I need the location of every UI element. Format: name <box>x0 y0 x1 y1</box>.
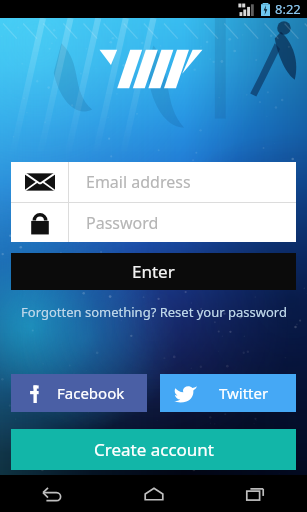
button[interactable]: Enter <box>11 253 296 290</box>
staticText: Password <box>86 212 159 234</box>
button[interactable]: Create account <box>11 429 296 470</box>
staticText: Facebook <box>57 383 125 403</box>
staticText: Forgotten something? Reset your password <box>21 303 287 321</box>
button[interactable]: Email address <box>11 162 296 202</box>
button[interactable]: Password <box>11 203 296 242</box>
button[interactable]: Forgotten something? Reset your password <box>11 300 296 324</box>
staticText: Twitter <box>219 383 269 403</box>
button[interactable]: Home <box>103 475 205 512</box>
staticText: Enter <box>132 260 175 283</box>
staticText: Create account <box>94 438 214 461</box>
button[interactable]: Recent apps <box>205 475 307 512</box>
button[interactable]: Twitter <box>160 374 296 412</box>
staticText: Email address <box>86 171 191 193</box>
staticText: 8:22 <box>275 0 301 18</box>
button[interactable]: Back <box>0 475 103 512</box>
button[interactable]: Facebook <box>11 374 147 412</box>
